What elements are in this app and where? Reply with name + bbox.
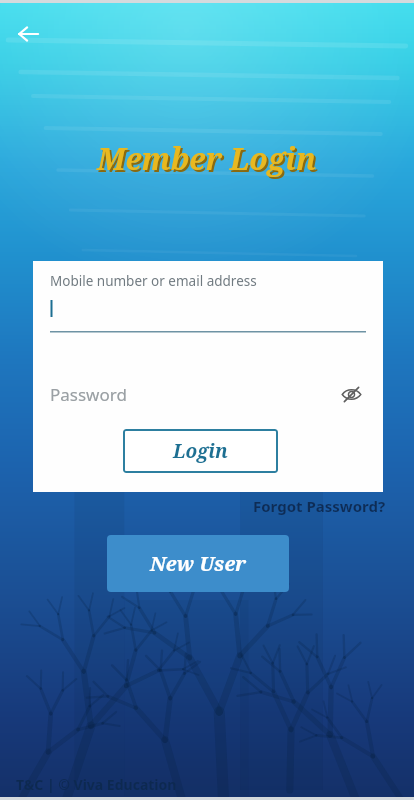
button[interactable]: Back (10, 16, 46, 52)
staticText: Password (50, 383, 336, 406)
staticText: Member Login (99, 140, 319, 181)
button[interactable]: Forgot Password? (250, 494, 389, 518)
staticText: New User (150, 550, 247, 577)
staticText: Member Login (97, 138, 317, 179)
button[interactable]: New User (107, 535, 289, 592)
staticText: T&C | © Viva Education (16, 775, 177, 794)
button[interactable] (50, 296, 366, 333)
button[interactable]: Password (50, 377, 366, 411)
button[interactable]: Show password (336, 379, 366, 409)
staticText: Mobile number or email address (50, 272, 257, 290)
staticText: Login (173, 438, 228, 464)
button[interactable]: Login (123, 429, 278, 473)
button[interactable]: T&C | © Viva Education (16, 775, 177, 794)
staticText: Forgot Password? (253, 496, 386, 516)
